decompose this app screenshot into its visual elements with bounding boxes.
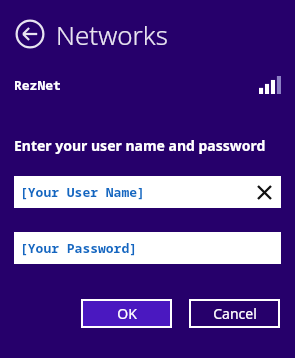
button[interactable]: RezNet: [0, 70, 295, 100]
button[interactable]: [Your User Name]: [14, 176, 281, 208]
button[interactable]: [Your Password]: [14, 232, 281, 264]
button[interactable]: Clear user name: [253, 181, 275, 203]
staticText: Enter your user name and password: [14, 136, 266, 155]
button[interactable]: Cancel: [189, 299, 280, 328]
staticText: [Your User Name]: [20, 183, 145, 201]
button[interactable]: Back: [14, 18, 46, 50]
button[interactable]: OK: [81, 299, 172, 328]
staticText: OK: [117, 304, 137, 323]
staticText: Networks: [56, 17, 168, 52]
staticText: [Your Password]: [20, 239, 138, 257]
staticText: Cancel: [213, 304, 257, 323]
other: Signal strength: [259, 76, 281, 94]
staticText: RezNet: [14, 76, 61, 94]
